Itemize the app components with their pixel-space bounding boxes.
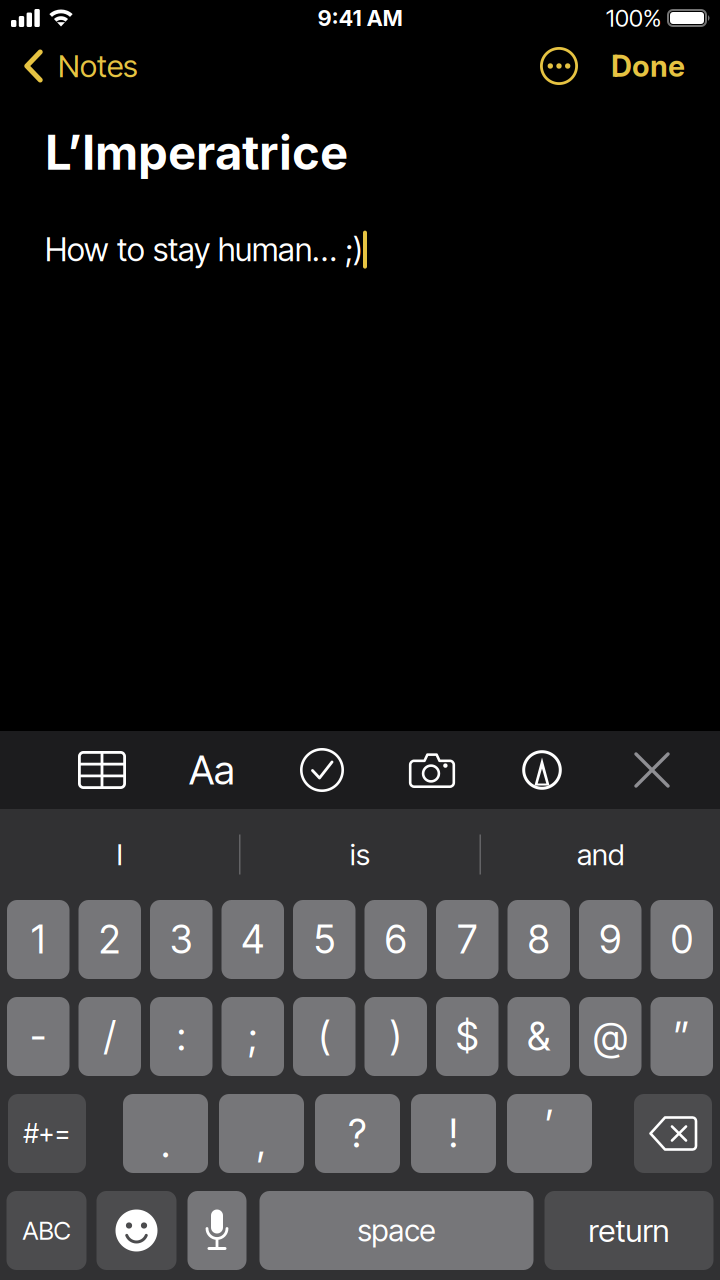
staticText: 100% (606, 3, 661, 32)
button[interactable]: is (240, 809, 479, 900)
staticText: 9 (599, 916, 621, 963)
staticText: 2 (99, 916, 121, 963)
button[interactable]: 4 (221, 900, 284, 979)
button[interactable]: , (219, 1094, 304, 1173)
staticText: ! (448, 1110, 458, 1157)
staticText: 4 (241, 916, 264, 963)
button[interactable]: 1 (7, 900, 69, 979)
staticText: 8 (528, 916, 550, 963)
staticText: ’ (544, 1101, 554, 1148)
staticText: ) (390, 1013, 402, 1060)
staticText: #+= (23, 1118, 70, 1149)
staticText: Aa (189, 746, 235, 794)
button[interactable]: #+= (8, 1094, 86, 1173)
staticText: ? (348, 1110, 366, 1157)
staticText: I (116, 837, 122, 872)
staticText: ; (248, 1013, 258, 1060)
button[interactable]: / (78, 997, 141, 1076)
staticText: ABC (22, 1215, 70, 1246)
button[interactable]: & (507, 997, 570, 1076)
button[interactable]: 0 (650, 900, 713, 979)
button[interactable]: - (7, 997, 69, 1076)
button[interactable]: space (259, 1191, 533, 1270)
button[interactable]: ; (221, 997, 284, 1076)
button[interactable]: 6 (364, 900, 427, 979)
staticText: : (177, 1013, 186, 1060)
staticText: 3 (170, 916, 193, 963)
button[interactable]: Done (611, 36, 720, 96)
button[interactable]: ( (293, 997, 355, 1076)
staticText: 7 (457, 916, 477, 963)
staticText: 6 (385, 916, 407, 963)
button[interactable]: return (544, 1191, 713, 1270)
staticText: / (104, 1013, 116, 1060)
button[interactable]: Format (167, 731, 257, 809)
staticText: , (256, 1118, 266, 1165)
staticText: L’Imperatrice (45, 124, 348, 181)
button[interactable]: ” (650, 997, 713, 1076)
button[interactable]: Markup (497, 731, 587, 809)
button[interactable]: Dictate (187, 1191, 246, 1270)
button[interactable]: I (0, 809, 239, 900)
button[interactable]: 5 (293, 900, 355, 979)
staticText: and (577, 837, 624, 872)
button[interactable]: Insert photo (387, 731, 477, 809)
button[interactable]: 9 (579, 900, 641, 979)
staticText: . (161, 1120, 170, 1167)
button[interactable]: ! (411, 1094, 496, 1173)
staticText: $ (456, 1013, 479, 1060)
staticText: & (527, 1013, 550, 1060)
staticText: - (30, 1013, 46, 1060)
staticText: is (350, 837, 370, 872)
staticText: ( (318, 1013, 330, 1060)
button[interactable]: 8 (507, 900, 570, 979)
button[interactable]: @ (579, 997, 641, 1076)
staticText: ” (673, 1013, 690, 1060)
button[interactable]: Notes (0, 36, 152, 96)
button[interactable]: Close keyboard (607, 731, 697, 809)
button[interactable]: ’ (507, 1094, 592, 1173)
button[interactable]: : (150, 997, 212, 1076)
button[interactable]: Delete (634, 1094, 712, 1173)
button[interactable]: 3 (150, 900, 212, 979)
button[interactable]: ABC (6, 1191, 86, 1270)
staticText: 0 (671, 916, 693, 963)
button[interactable]: . (123, 1094, 208, 1173)
staticText: How to stay human… ;) (45, 230, 363, 269)
button[interactable]: ) (364, 997, 427, 1076)
staticText: @ (593, 1013, 627, 1060)
button[interactable]: Checklist (277, 731, 367, 809)
button[interactable]: Emoji (96, 1191, 176, 1270)
button[interactable]: 7 (436, 900, 498, 979)
staticText: Notes (58, 47, 138, 84)
button[interactable]: 2 (78, 900, 141, 979)
staticText: return (588, 1211, 669, 1249)
button[interactable]: Table (57, 731, 147, 809)
staticText: 1 (31, 916, 45, 963)
staticText: Done (611, 48, 685, 84)
staticText: 5 (314, 916, 335, 963)
button[interactable]: $ (436, 997, 498, 1076)
button[interactable]: ? (315, 1094, 400, 1173)
button[interactable]: More (529, 36, 589, 96)
staticText: space (357, 1212, 435, 1249)
staticText: 9:41 AM (317, 5, 402, 31)
button[interactable]: and (481, 809, 720, 900)
